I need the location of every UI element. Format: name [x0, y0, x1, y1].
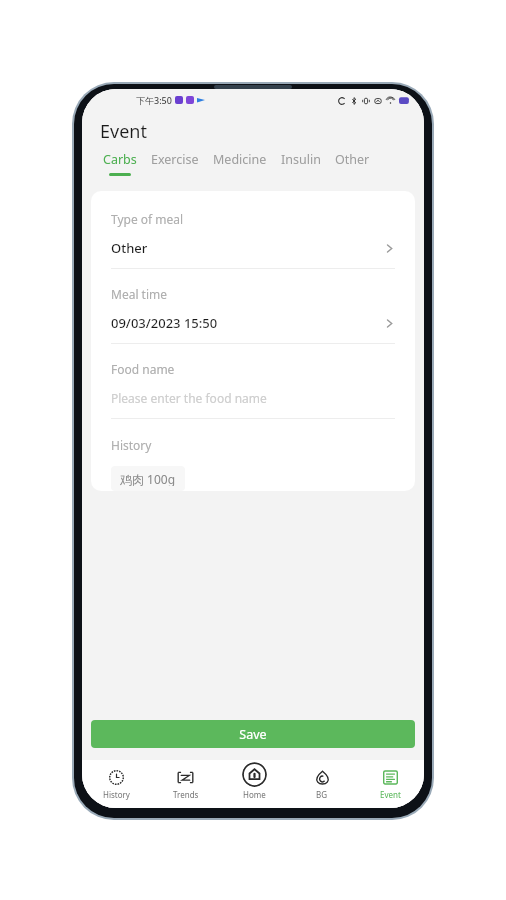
staticText: 09/03/2023 15:50	[111, 314, 218, 332]
button[interactable]: History	[82, 760, 151, 808]
staticText: Insulin	[281, 151, 321, 168]
button[interactable]: Carbs	[96, 151, 144, 176]
staticText: History	[111, 437, 152, 453]
staticText: Food name	[111, 361, 175, 377]
staticText: Medicine	[213, 151, 267, 168]
staticText: Home	[243, 789, 266, 800]
staticText: Trends	[173, 789, 199, 800]
button[interactable]: Medicine	[206, 151, 274, 173]
button[interactable]: Trends	[151, 760, 220, 808]
button[interactable]: BG	[288, 760, 356, 808]
staticText: Other	[111, 239, 148, 257]
button[interactable]: Home	[220, 760, 288, 808]
button[interactable]: 鸡肉 100g	[111, 466, 185, 491]
staticText: Please enter the food name	[111, 390, 267, 406]
staticText: 下午3:50	[136, 94, 172, 106]
button[interactable]: Other	[328, 151, 377, 173]
button[interactable]: Save	[91, 720, 415, 748]
staticText: Carbs	[103, 151, 137, 168]
button[interactable]: Other	[111, 239, 395, 257]
staticText: Exercise	[151, 151, 199, 168]
button[interactable]: Exercise	[144, 151, 206, 173]
button[interactable]: 09/03/2023 15:50	[111, 314, 395, 332]
staticText: Event	[100, 119, 147, 144]
staticText: Type of meal	[111, 211, 184, 227]
staticText: History	[103, 789, 130, 800]
staticText: Meal time	[111, 286, 168, 302]
staticText: Event	[380, 789, 401, 800]
staticText: Save	[239, 726, 267, 743]
button[interactable]: Please enter the food name	[111, 390, 395, 406]
button[interactable]: Event	[356, 760, 424, 808]
staticText: Other	[335, 151, 370, 168]
button[interactable]: Insulin	[274, 151, 328, 173]
staticText: BG	[316, 789, 328, 800]
staticText: 鸡肉 100g	[120, 471, 176, 486]
